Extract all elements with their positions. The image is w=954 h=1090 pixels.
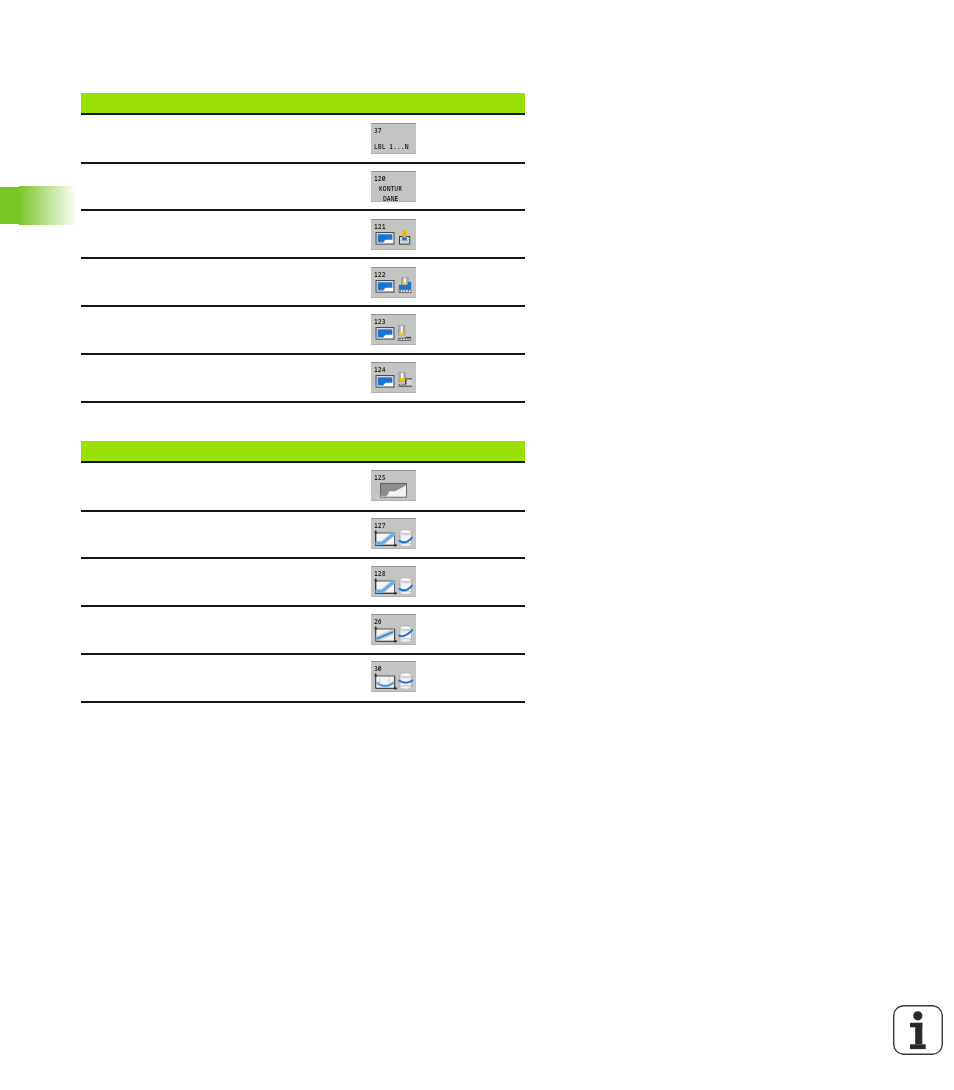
staticText: KONTUR — [379, 184, 403, 193]
staticText: 128 — [374, 569, 386, 578]
button[interactable]: Cycle 30 cylinder surface contour — [371, 661, 416, 692]
button[interactable]: Cycle 128 cylinder surface slot — [371, 566, 416, 597]
staticText: LBL 1...N — [374, 142, 409, 151]
button[interactable]: Cycle 125 contour train — [371, 470, 416, 501]
button[interactable]: Cycle 122 roughing — [371, 267, 416, 298]
staticText: 26 — [374, 617, 382, 626]
button[interactable]: Information — [893, 1005, 943, 1055]
button[interactable]: Cycle 120 KONTUR DANE — [371, 171, 416, 202]
button[interactable]: Cycle 124 side finishing — [371, 362, 416, 393]
button[interactable]: Cycle 121 pre-drilling — [371, 219, 416, 250]
staticText: 37 — [374, 126, 382, 135]
staticText: 121 — [374, 222, 386, 231]
staticText: 127 — [374, 521, 386, 530]
button[interactable]: Cycle 37 LBL 1...N — [371, 123, 416, 154]
staticText: 120 — [374, 174, 386, 183]
staticText: 124 — [374, 365, 386, 374]
button[interactable]: Cycle 127 cylinder surface — [371, 518, 416, 549]
staticText: 30 — [374, 664, 382, 673]
staticText: 122 — [374, 270, 386, 279]
staticText: DANE — [383, 194, 399, 202]
button[interactable]: Cycle 123 floor finishing — [371, 314, 416, 345]
staticText: 125 — [374, 473, 386, 482]
staticText: 123 — [374, 317, 386, 326]
button[interactable]: Cycle 26 cylinder surface ridge — [371, 614, 416, 645]
